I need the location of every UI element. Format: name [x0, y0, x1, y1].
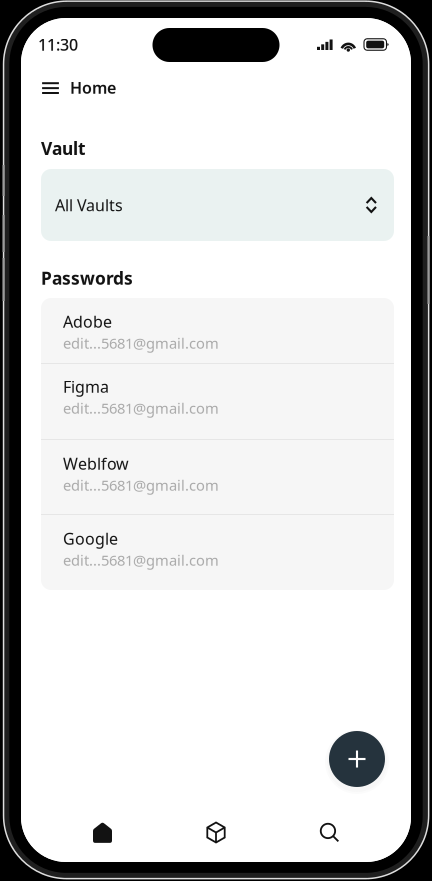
staticText: Google	[63, 528, 118, 549]
staticText: edit...5681@gmail.com	[63, 333, 219, 353]
staticText: edit...5681@gmail.com	[63, 475, 219, 495]
staticText: edit...5681@gmail.com	[63, 550, 219, 570]
button[interactable]: Figma	[41, 364, 394, 439]
staticText: edit...5681@gmail.com	[63, 398, 219, 418]
button[interactable]: Adobe	[41, 298, 394, 363]
staticText: Figma	[63, 376, 109, 397]
button[interactable]: Menu	[36, 74, 65, 103]
button[interactable]: Home	[46, 810, 159, 854]
staticText: 11:30	[38, 34, 78, 55]
button[interactable]: Weblfow	[41, 440, 394, 514]
button[interactable]: Add password	[329, 731, 385, 787]
button[interactable]: Google	[41, 515, 394, 590]
button[interactable]: All Vaults	[41, 169, 394, 241]
staticText: All Vaults	[55, 194, 123, 216]
staticText: Adobe	[63, 311, 112, 332]
staticText: Vault	[41, 137, 86, 160]
staticText: Passwords	[41, 267, 133, 290]
staticText: Home	[70, 77, 116, 98]
staticText: Weblfow	[63, 453, 129, 474]
button[interactable]: Search	[273, 810, 386, 854]
button[interactable]: Vaults	[159, 810, 273, 854]
